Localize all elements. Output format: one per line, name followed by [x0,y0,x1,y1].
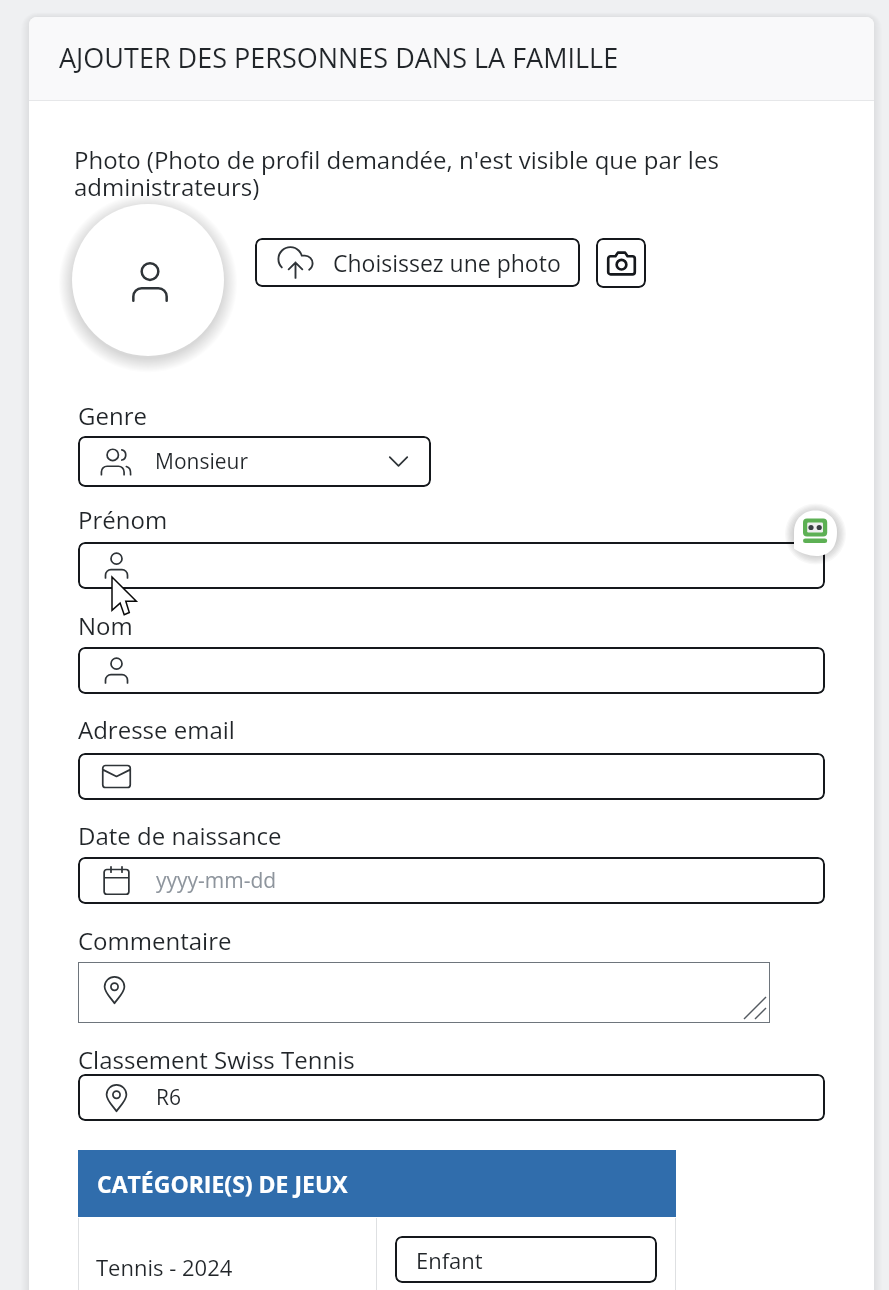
staticText: Genre [78,399,147,432]
staticText: Enfant [416,1245,483,1275]
button[interactable]: yyyy-mm-dd [78,857,825,904]
button[interactable]: R6 [78,1074,825,1121]
button[interactable]: Enfant [395,1236,657,1283]
button[interactable]: Prendre une photo [596,238,646,288]
staticText: yyyy-mm-dd [156,866,277,895]
staticText: Classement Swiss Tennis [78,1043,355,1076]
button[interactable] [78,962,770,1023]
staticText: AJOUTER DES PERSONNES DANS LA FAMILLE [59,39,619,76]
staticText: Commentaire [78,924,232,957]
staticText: Tennis - 2024 [96,1252,233,1282]
button[interactable]: Choisissez une photo [255,238,580,287]
staticText: Photo (Photo de profil demandée, n'est v… [74,148,734,202]
button[interactable]: Monsieur [78,436,431,487]
staticText: Nom [78,609,133,642]
staticText: Adresse email [78,713,235,746]
button[interactable] [78,542,825,589]
button[interactable] [78,647,825,694]
staticText: Monsieur [155,447,248,476]
staticText: R6 [156,1083,181,1112]
staticText: Choisissez une photo [333,247,561,278]
button[interactable] [78,753,825,800]
staticText: Date de naissance [78,819,282,852]
staticText: Prénom [78,503,168,536]
staticText: CATÉGORIE(S) DE JEUX [97,1168,348,1199]
